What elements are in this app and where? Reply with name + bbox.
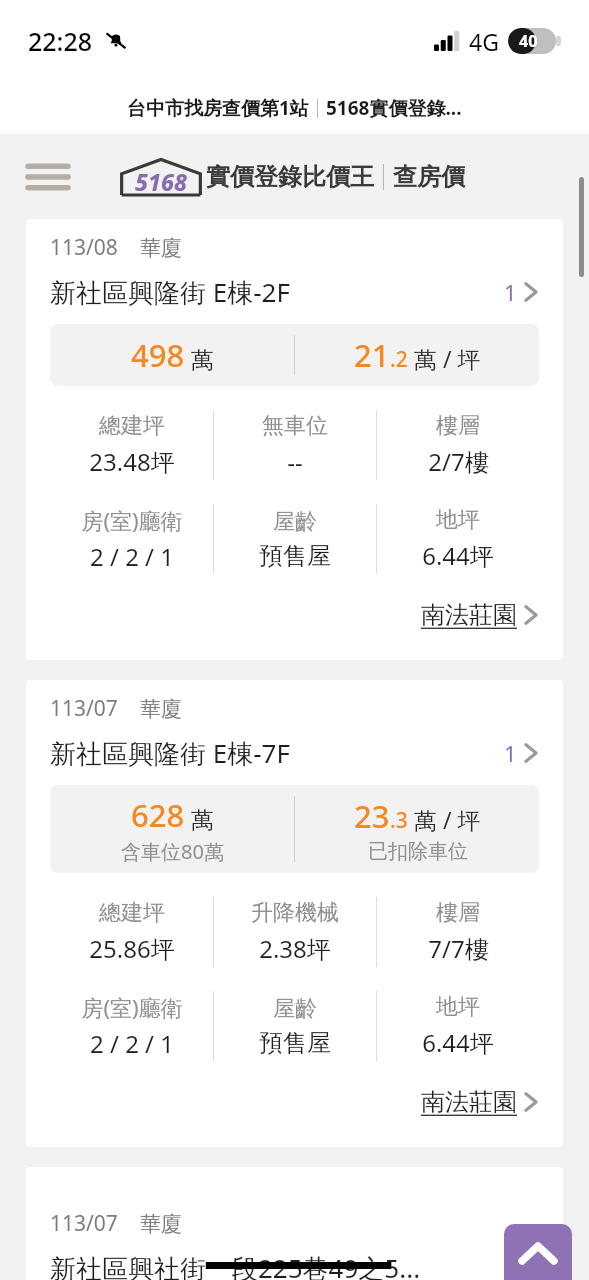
staticText: 台中市找房查價第1站	[127, 95, 309, 121]
staticText: 新社區興隆街 E棟-7F	[50, 735, 290, 771]
staticText: 4G	[469, 26, 499, 57]
staticText: 南法莊園	[421, 600, 517, 630]
staticText: 實價登錄比價王	[206, 162, 374, 192]
staticText: 屋齡	[273, 508, 317, 536]
staticText: 5168實價登錄...	[326, 95, 462, 121]
staticText: 含車位80萬	[121, 838, 224, 865]
staticText: 25.86坪	[89, 932, 175, 965]
staticText: .3	[390, 806, 408, 835]
staticText: 預售屋	[259, 1028, 331, 1058]
staticText: 1	[504, 738, 517, 768]
staticText: 華廈	[140, 696, 182, 722]
staticText: 2.38坪	[259, 932, 331, 965]
staticText: 新社區興社街一段225巷49之5...	[50, 1250, 421, 1280]
staticText: 屋齡	[273, 995, 317, 1023]
button[interactable]: Menu	[22, 151, 74, 203]
staticText: 23	[354, 795, 390, 837]
staticText: 房(室)廳衛	[81, 992, 183, 1022]
staticText: 樓層	[436, 899, 480, 927]
staticText: 總建坪	[99, 412, 165, 440]
staticText: 預售屋	[259, 541, 331, 571]
staticText: 地坪	[436, 506, 480, 534]
staticText: 5168	[135, 166, 187, 197]
staticText: 2 / 2 / 1	[90, 1027, 174, 1060]
staticText: .2	[390, 345, 408, 374]
staticText: 升降機械	[251, 899, 339, 927]
staticText: 查房價	[393, 162, 465, 192]
button[interactable]: 113/08	[26, 219, 563, 660]
staticText: 113/07	[50, 694, 118, 723]
staticText: 房(室)廳衛	[81, 505, 183, 535]
staticText: 6.44坪	[422, 539, 494, 572]
staticText: 無車位	[262, 412, 328, 440]
staticText: 萬 / 坪	[408, 343, 481, 374]
button[interactable]: 南法莊園	[421, 1087, 539, 1117]
staticText: --	[287, 445, 303, 478]
staticText: 7/7樓	[428, 932, 489, 965]
staticText: 已扣除車位	[368, 839, 468, 864]
staticText: 22:28	[28, 24, 93, 58]
staticText: 萬	[185, 343, 214, 374]
staticText: 1	[504, 277, 517, 307]
staticText: 總建坪	[99, 899, 165, 927]
staticText: 樓層	[436, 412, 480, 440]
staticText: 21	[354, 334, 390, 376]
staticText: 23.48坪	[89, 445, 175, 478]
staticText: 華廈	[140, 235, 182, 261]
button[interactable]: 113/07	[26, 680, 563, 1147]
button[interactable]: 113/07	[26, 1167, 563, 1280]
staticText: 113/08	[50, 233, 118, 262]
staticText: 南法莊園	[421, 1087, 517, 1117]
staticText: 498	[131, 334, 185, 376]
staticText: 2/7樓	[428, 445, 489, 478]
staticText: 628	[131, 794, 185, 836]
staticText: 地坪	[436, 993, 480, 1021]
button[interactable]: Scroll to top	[504, 1224, 572, 1280]
staticText: 萬	[185, 803, 214, 834]
staticText: 華廈	[140, 1211, 182, 1237]
staticText: 2 / 2 / 1	[90, 540, 174, 573]
button[interactable]: 5168	[120, 157, 465, 197]
staticText: 萬 / 坪	[408, 804, 481, 835]
staticText: 113/07	[50, 1209, 118, 1238]
staticText: 40	[519, 30, 538, 52]
staticText: 新社區興隆街 E棟-2F	[50, 274, 290, 310]
staticText: 6.44坪	[422, 1026, 494, 1059]
button[interactable]: 南法莊園	[421, 600, 539, 630]
